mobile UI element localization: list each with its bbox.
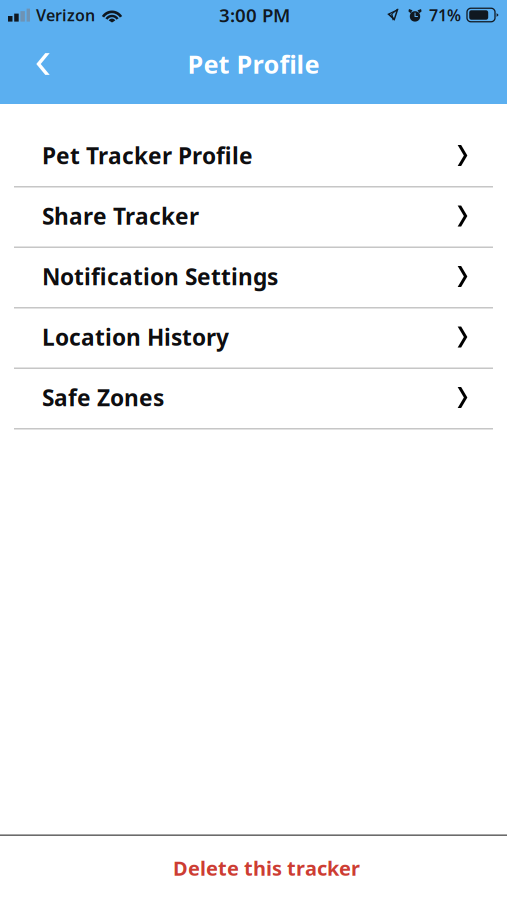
staticText: Verizon bbox=[36, 4, 95, 26]
button[interactable]: Share Tracker bbox=[0, 187, 507, 246]
button[interactable]: Back bbox=[14, 36, 72, 92]
staticText: Share Tracker bbox=[42, 201, 199, 231]
button[interactable]: Delete this tracker bbox=[0, 836, 507, 900]
staticText: Location History bbox=[42, 322, 229, 352]
staticText: 3:00 PM bbox=[219, 3, 290, 27]
button[interactable]: Location History bbox=[0, 308, 507, 367]
button[interactable]: Pet Tracker Profile bbox=[0, 127, 507, 186]
button[interactable]: Safe Zones bbox=[0, 369, 507, 428]
staticText: Delete this tracker bbox=[173, 855, 360, 881]
staticText: Safe Zones bbox=[42, 382, 164, 412]
staticText: Notification Settings bbox=[42, 261, 278, 291]
staticText: Pet Tracker Profile bbox=[42, 140, 253, 170]
staticText: Pet Profile bbox=[187, 47, 319, 81]
staticText: 71% bbox=[429, 4, 461, 26]
button[interactable]: Notification Settings bbox=[0, 248, 507, 307]
